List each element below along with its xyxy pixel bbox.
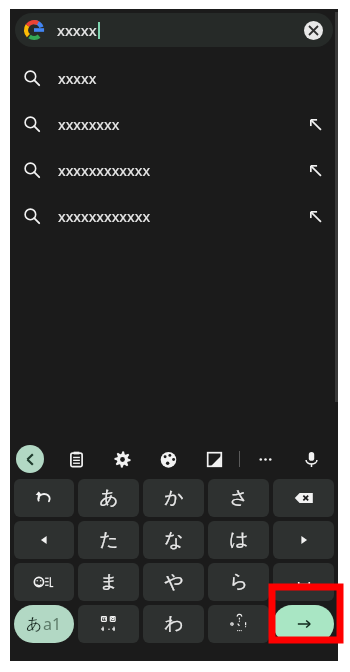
button[interactable]: xxxxx bbox=[10, 55, 338, 101]
button[interactable]: Clear bbox=[304, 21, 323, 40]
button[interactable]: わ bbox=[143, 605, 204, 643]
button[interactable]: な bbox=[143, 521, 204, 559]
button[interactable]: さ bbox=[208, 479, 269, 517]
staticText: xxxxxxxxxxxx bbox=[58, 206, 151, 226]
button[interactable]: ら bbox=[208, 563, 269, 601]
staticText: xxxxx bbox=[57, 20, 97, 40]
staticText: は bbox=[229, 528, 249, 552]
button[interactable]: Backspace bbox=[273, 479, 334, 517]
staticText: xxxxx bbox=[58, 68, 97, 88]
button[interactable]: Cursor left bbox=[14, 521, 74, 559]
staticText: ま bbox=[99, 570, 119, 594]
button[interactable]: Voice input bbox=[296, 444, 326, 474]
button[interactable]: Theme bbox=[153, 444, 183, 474]
staticText: あ bbox=[99, 486, 119, 510]
button[interactable]: Fill query bbox=[304, 205, 326, 227]
button[interactable]: Switch input mode bbox=[14, 605, 74, 643]
staticText: た bbox=[99, 528, 119, 552]
button[interactable]: や bbox=[143, 563, 204, 601]
button[interactable]: Back bbox=[16, 445, 44, 473]
button[interactable]: xxxxxxxx bbox=[10, 101, 338, 147]
button[interactable]: Emoji and symbols bbox=[14, 563, 74, 601]
button[interactable]: Space bbox=[273, 563, 334, 601]
staticText: あ bbox=[26, 614, 43, 634]
button[interactable]: Resize bbox=[199, 444, 229, 474]
other: Google bbox=[25, 21, 43, 39]
staticText: な bbox=[164, 528, 184, 552]
button[interactable]: Enter bbox=[273, 605, 334, 643]
button[interactable]: Undo bbox=[14, 479, 74, 517]
staticText: わ bbox=[164, 612, 184, 636]
staticText: ら bbox=[229, 570, 249, 594]
staticText: や bbox=[164, 570, 184, 594]
button[interactable]: Cursor right bbox=[273, 521, 334, 559]
button[interactable]: Small letters and marks bbox=[78, 605, 139, 643]
button[interactable]: Punctuation bbox=[208, 605, 269, 643]
button[interactable]: あ bbox=[78, 479, 139, 517]
button[interactable]: xxxxxxxxxxxx bbox=[10, 193, 338, 239]
button[interactable]: は bbox=[208, 521, 269, 559]
button[interactable]: か bbox=[143, 479, 204, 517]
button[interactable]: Clipboard bbox=[61, 444, 91, 474]
staticText: か bbox=[164, 486, 184, 510]
button[interactable]: Settings bbox=[107, 444, 137, 474]
staticText: a1 bbox=[43, 613, 62, 635]
button[interactable]: xxxxxxxxxxxx bbox=[10, 147, 338, 193]
button[interactable]: ま bbox=[78, 563, 139, 601]
staticText: さ bbox=[229, 486, 249, 510]
button[interactable]: More options bbox=[250, 444, 280, 474]
button[interactable]: Fill query bbox=[304, 113, 326, 135]
button[interactable]: Fill query bbox=[304, 159, 326, 181]
button[interactable]: た bbox=[78, 521, 139, 559]
button[interactable]: Google bbox=[15, 13, 333, 47]
staticText: xxxxxxxxxxxx bbox=[58, 160, 151, 180]
staticText: xxxxxxxx bbox=[58, 114, 120, 134]
